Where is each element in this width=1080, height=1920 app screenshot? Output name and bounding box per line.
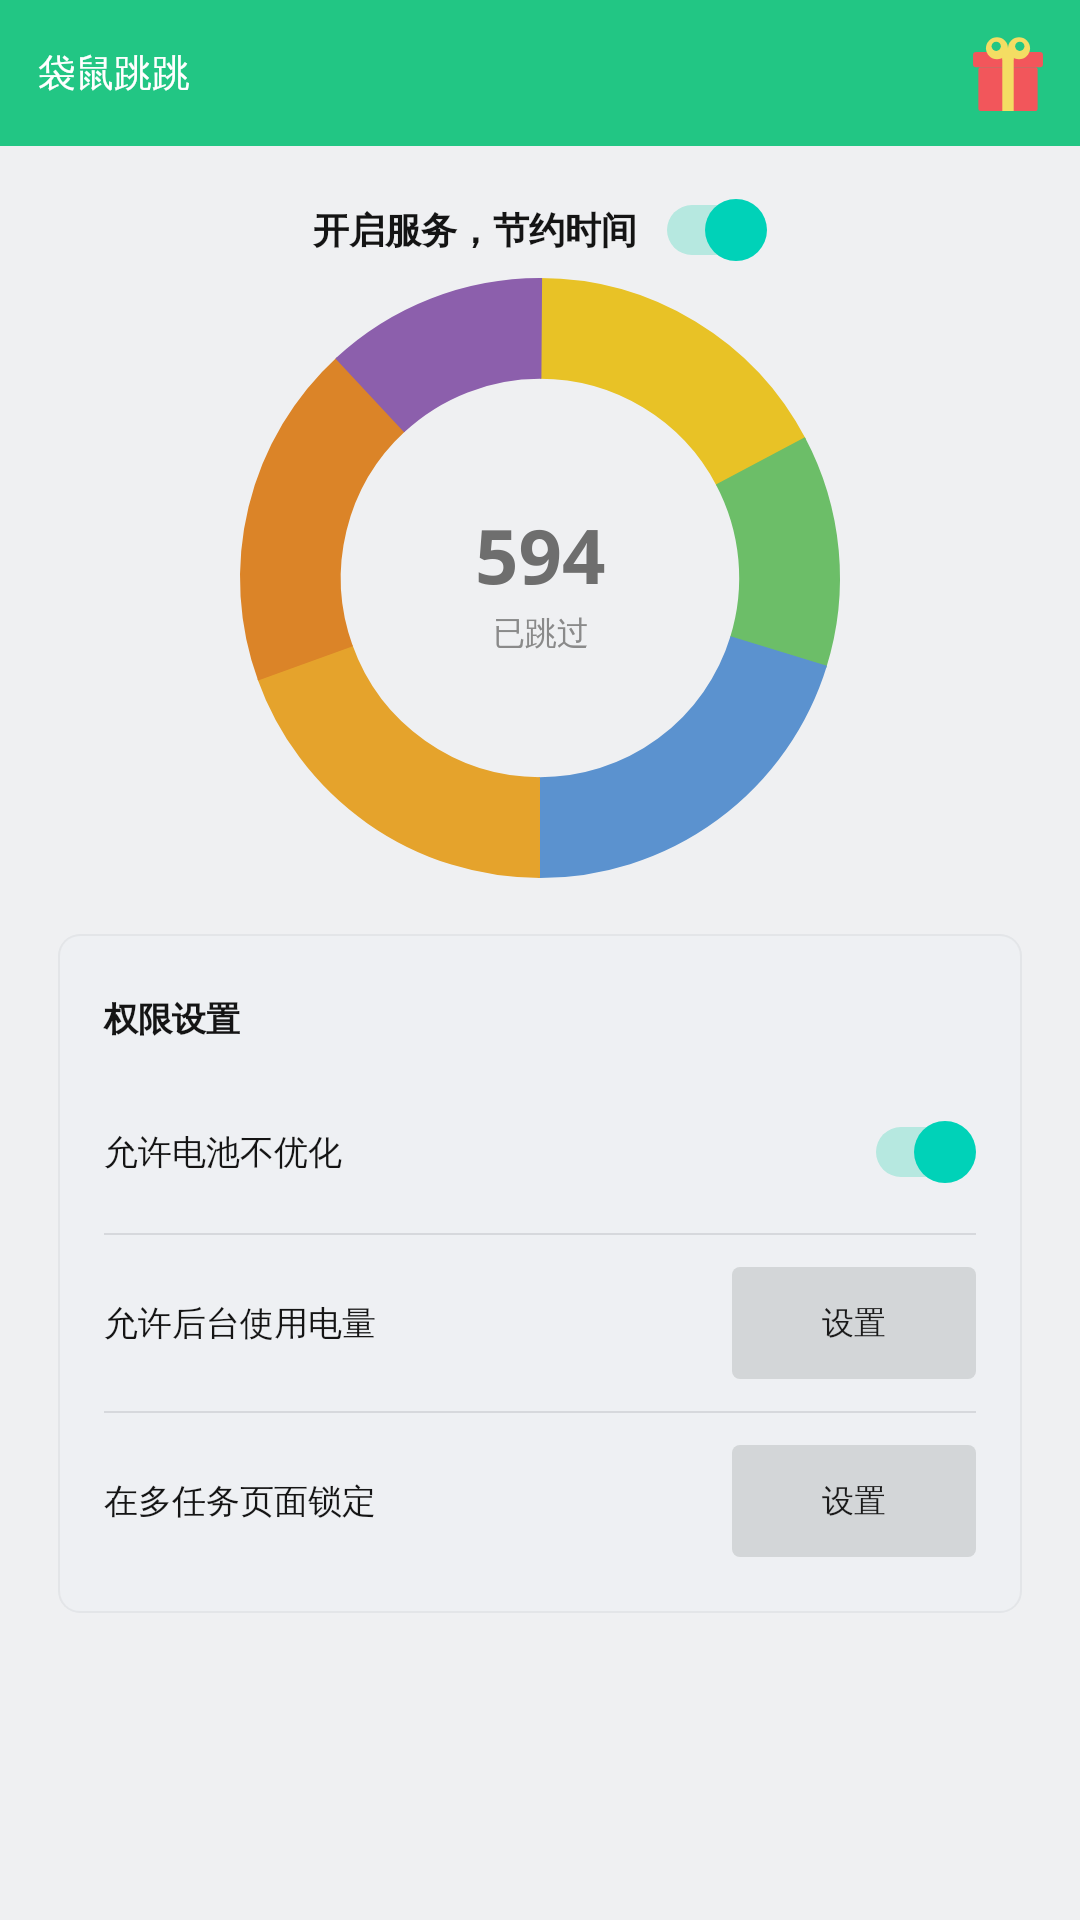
staticText: 权限设置	[104, 998, 240, 1041]
staticText: 594	[475, 503, 606, 607]
button[interactable]: 设置	[732, 1445, 976, 1557]
button[interactable]: Gift	[960, 25, 1056, 121]
staticText: 设置	[822, 1303, 886, 1343]
staticText: 在多任务页面锁定	[104, 1480, 376, 1523]
button[interactable]: 允许电池不优化	[60, 1097, 1020, 1207]
staticText: 允许后台使用电量	[104, 1302, 376, 1345]
staticText: 允许电池不优化	[104, 1131, 342, 1174]
button[interactable]: Toggle	[663, 198, 767, 262]
staticText: 开启服务，节约时间	[313, 208, 637, 253]
button[interactable]: 开启服务，节约时间	[313, 198, 767, 262]
staticText: 已跳过	[493, 613, 589, 653]
staticText: 袋鼠跳跳	[38, 49, 190, 97]
staticText: 设置	[822, 1481, 886, 1521]
button[interactable]: 设置	[732, 1267, 976, 1379]
button[interactable]: Toggle	[872, 1120, 976, 1184]
